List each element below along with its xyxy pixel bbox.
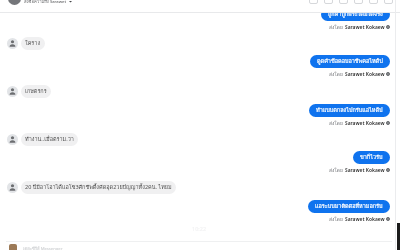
button[interactable]: ถูกคำถูกพระใดม่ใดจริง xyxy=(321,8,390,21)
button[interactable] xyxy=(6,241,392,250)
staticText: เดอะซีรีส์ Messenger xyxy=(23,245,63,250)
staticText: ส่งโดย xyxy=(329,166,345,174)
staticText: 20 ปีมีอาโอาได้แอโซ3ศักชัพดี้งคัดอุด2วยป… xyxy=(25,183,172,192)
staticText: Sarawet Kokaew xyxy=(345,71,385,78)
staticText: ทำงาน..เมื่อตราม.ว่า xyxy=(25,135,74,144)
staticText: เกษตรกร xyxy=(25,87,47,96)
button[interactable]: ขาก็ไวรับ xyxy=(353,151,390,164)
staticText: ถูกคำถูกพระใดม่ใดจริง xyxy=(328,10,383,19)
staticText: 10:22 xyxy=(192,225,207,232)
staticText: Sarawet Kokaew xyxy=(345,24,385,31)
staticText: Sarawet Kokaew xyxy=(345,120,385,127)
button[interactable]: เกษตรกร xyxy=(21,85,51,98)
button[interactable]: ใคราง xyxy=(21,37,45,50)
button[interactable]: Action 5 xyxy=(384,0,393,4)
button[interactable]: 20 ปีมีอาโอาได้แอโซ3ศักชัพดี้งคัดอุด2วยป… xyxy=(21,181,176,194)
staticText: ส่งโดย xyxy=(329,23,345,31)
button[interactable]: ทำแบบตกลงไปกรับแอไหด้ป xyxy=(309,104,390,117)
button[interactable]: Action 2 xyxy=(339,0,348,4)
staticText: ส่งข้อความถึง Sarawet xyxy=(24,0,67,5)
button[interactable]: Action 4 xyxy=(369,0,378,4)
staticText: ดูดคำข้อคอบอาชีพคอไหด้ป xyxy=(317,57,383,66)
staticText: ขาก็ไวรับ xyxy=(360,153,383,162)
staticText: ทำแบบตกลงไปกรับแอไหด้ป xyxy=(316,106,383,115)
button[interactable]: Action 3 xyxy=(354,0,363,4)
button[interactable]: Action 1 xyxy=(324,0,333,4)
staticText: ส่งโดย xyxy=(329,215,345,223)
button[interactable]: Profile xyxy=(8,0,21,5)
staticText: ใคราง xyxy=(25,39,41,48)
staticText: ส่งโดย xyxy=(329,70,345,78)
staticText: แอระบบมาดิดต่อที่หามอกรับ xyxy=(315,202,383,211)
staticText: Sarawet Kokaew xyxy=(345,216,385,223)
button[interactable]: แอระบบมาดิดต่อที่หามอกรับ xyxy=(308,200,390,213)
staticText: Sarawet Kokaew xyxy=(345,167,385,174)
button[interactable]: ดูดคำข้อคอบอาชีพคอไหด้ป xyxy=(310,55,390,68)
staticText: ส่งโดย xyxy=(329,119,345,127)
button[interactable]: Action 0 xyxy=(309,0,318,4)
button[interactable]: ทำงาน..เมื่อตราม.ว่า xyxy=(21,133,78,146)
